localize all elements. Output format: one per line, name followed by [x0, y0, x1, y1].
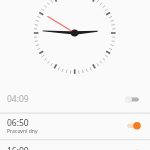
staticText: 06:50: [7, 117, 29, 129]
staticText: 16:00: [7, 145, 29, 150]
button[interactable]: Alarm 16:00: [0, 139, 150, 150]
staticText: 04:09: [7, 93, 29, 105]
button[interactable]: Alarm 06:50: [0, 112, 150, 139]
staticText: Pracovní dny: [7, 128, 38, 135]
button[interactable]: Alarm 04:09: [0, 86, 150, 112]
